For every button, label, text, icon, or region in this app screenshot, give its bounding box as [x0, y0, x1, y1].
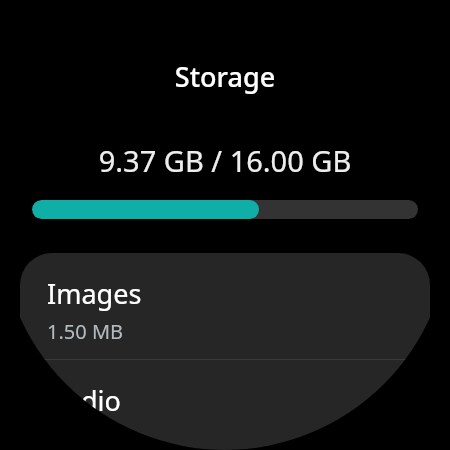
staticText: Storage — [0, 58, 450, 95]
staticText: Images — [47, 275, 142, 312]
staticText: 1.50 MB — [47, 318, 124, 345]
button[interactable]: Audio — [20, 360, 430, 450]
staticText: Audio — [47, 382, 121, 419]
staticText: 9.37 GB / 16.00 GB — [0, 141, 450, 180]
button[interactable]: Images — [20, 253, 430, 359]
